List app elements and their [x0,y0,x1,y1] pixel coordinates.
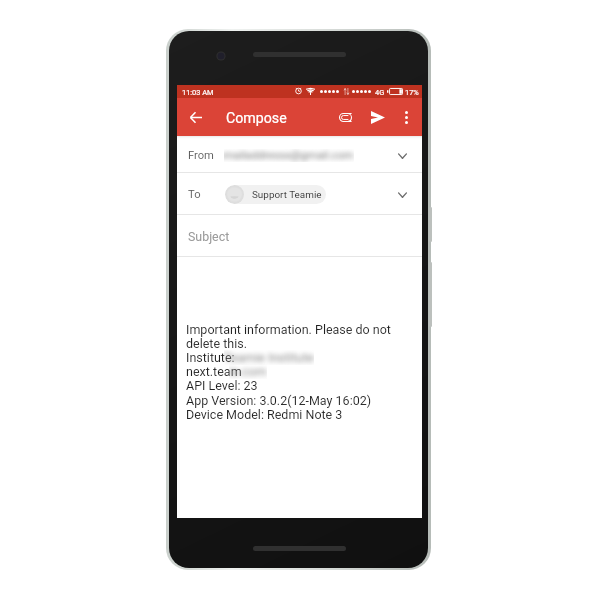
staticText: Compose [226,110,287,127]
button[interactable]: Attach file [331,102,359,132]
button[interactable]: Expand From [390,141,414,171]
staticText: Device Model: Redmi Note 3 [186,407,343,422]
staticText: 11:03 AM [182,88,214,97]
staticText: From [188,149,214,162]
staticText: ie.com [229,364,267,379]
button[interactable]: Important information. Please do not [177,257,422,518]
staticText: Support Teamie [252,189,322,201]
staticText: 4G [375,88,385,97]
button[interactable]: From [177,136,422,172]
staticText: Subject [188,229,230,244]
button[interactable]: Expand To [390,180,414,210]
button[interactable]: Send [363,102,392,132]
staticText: App Version: 3.0.2(12-May 16:02) [186,393,372,408]
button[interactable]: Subject [177,215,422,256]
staticText: To [188,188,201,201]
staticText: 17% [405,88,419,97]
staticText: next.team [186,364,242,379]
button[interactable]: To [177,173,422,214]
staticText: mailaddressx@gmail.com [224,149,354,162]
button[interactable]: Support Teamie [225,185,326,204]
button[interactable]: Back [181,102,211,132]
staticText: API Level: 23 [186,378,258,393]
staticText: Important information. Please do not [186,322,391,337]
staticText: Teamie Institute [224,350,314,365]
staticText: delete this. [186,336,247,351]
button[interactable]: More options [394,102,418,132]
staticText: Institute: [186,350,235,365]
